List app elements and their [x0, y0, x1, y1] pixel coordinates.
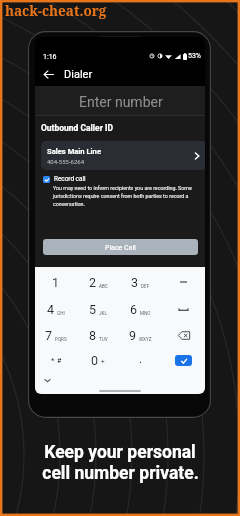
button[interactable]: Hide keyboard	[40, 373, 55, 388]
staticText: GHI	[57, 311, 65, 316]
button[interactable]: 0	[77, 347, 119, 373]
staticText: hack-cheat.org	[5, 2, 107, 20]
button[interactable]: Record call	[43, 175, 86, 183]
staticText: .	[139, 352, 143, 366]
staticText: Sales Main Line	[47, 147, 101, 156]
button[interactable]: Space	[162, 296, 205, 322]
other: Dash	[180, 278, 187, 286]
staticText: cell number private.	[42, 463, 199, 484]
button[interactable]: 9	[119, 322, 162, 348]
button[interactable]: 3	[119, 269, 162, 295]
staticText: 1	[52, 275, 60, 290]
staticText: 3	[131, 275, 139, 290]
staticText: 4	[47, 302, 55, 317]
staticText: 2	[89, 275, 97, 290]
button[interactable]: Dash	[162, 269, 205, 295]
staticText: 6	[130, 302, 138, 317]
button[interactable]: .	[119, 347, 162, 373]
button[interactable]: Delete	[162, 322, 205, 348]
staticText: Outbound Caller ID	[41, 123, 113, 133]
staticText: Keep your personal	[44, 442, 196, 463]
other: Space	[179, 305, 188, 313]
staticText: 5	[89, 302, 97, 317]
button[interactable]: Sales Main Line	[41, 141, 205, 170]
button[interactable]: Place Call	[43, 239, 198, 255]
staticText: 9	[129, 328, 137, 343]
staticText: 53%	[188, 52, 201, 60]
staticText: ABC	[99, 284, 108, 289]
other: Delete	[178, 331, 190, 340]
staticText: TUV	[99, 337, 108, 342]
staticText: Record call	[54, 175, 86, 183]
button[interactable]: Enter number	[35, 86, 205, 115]
staticText: 1:16	[43, 53, 57, 61]
button[interactable]: Back	[38, 64, 58, 84]
button[interactable]: 1	[35, 269, 77, 295]
button[interactable]: 6	[119, 296, 162, 322]
staticText: JKL	[99, 311, 107, 316]
button[interactable]: 4	[35, 296, 77, 322]
button[interactable]: 8	[77, 322, 119, 348]
staticText: DEF	[141, 284, 150, 289]
staticText: Place Call	[105, 244, 136, 252]
staticText: 8	[89, 328, 97, 343]
staticText: 404-555-6264	[47, 158, 85, 165]
button[interactable]: 5	[77, 296, 119, 322]
staticText: MNO	[140, 311, 151, 316]
button[interactable]: 2	[77, 269, 119, 295]
staticText: 0	[91, 353, 99, 368]
staticText: #	[57, 357, 62, 365]
staticText: You may need to inform recipients you ar…	[53, 185, 205, 208]
staticText: PQRS	[55, 337, 67, 342]
staticText: WXYZ	[139, 337, 152, 342]
staticText: 7	[45, 328, 53, 343]
button[interactable]: 7	[35, 322, 77, 348]
button[interactable]: Enter	[175, 355, 192, 366]
staticText: Dialer	[64, 68, 93, 81]
staticText: Enter number	[79, 94, 163, 110]
staticText: +	[101, 358, 105, 366]
staticText: *	[51, 356, 55, 365]
button[interactable]: *	[35, 347, 77, 373]
